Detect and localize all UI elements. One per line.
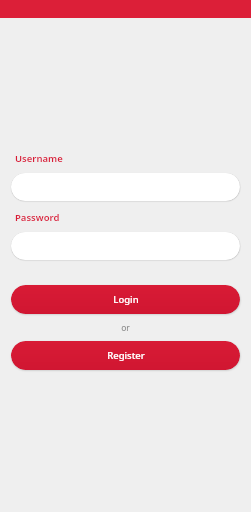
button[interactable] — [11, 173, 240, 201]
staticText: Password — [15, 211, 60, 224]
staticText: or — [121, 322, 130, 334]
staticText: Username — [15, 152, 63, 165]
button[interactable]: Register — [11, 341, 240, 370]
staticText: Register — [107, 349, 145, 362]
button[interactable]: Login — [11, 285, 240, 314]
staticText: Login — [113, 293, 139, 306]
button[interactable] — [11, 232, 240, 260]
